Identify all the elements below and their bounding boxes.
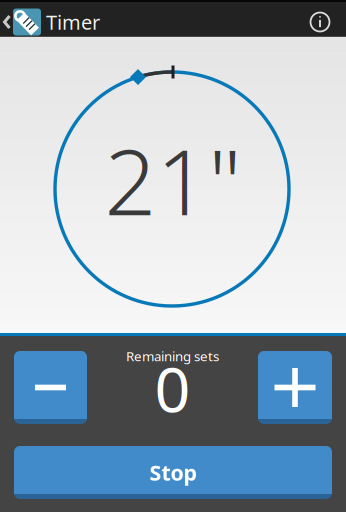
button[interactable]: Increase sets (258, 351, 332, 424)
button[interactable]: Info (298, 0, 342, 44)
staticText: 21" (104, 120, 241, 240)
staticText: Remaining sets (126, 347, 219, 365)
staticText: 0 (154, 346, 190, 430)
button[interactable]: Stop (14, 446, 332, 499)
staticText: Timer (46, 9, 100, 35)
button[interactable]: Timer (0, 0, 180, 44)
staticText: Stop (149, 458, 196, 487)
button[interactable]: Decrease sets (14, 351, 87, 424)
